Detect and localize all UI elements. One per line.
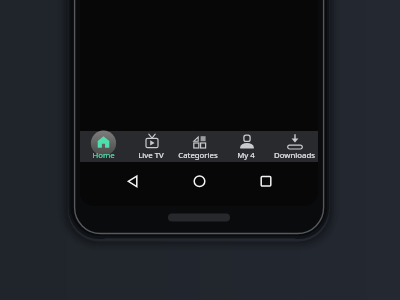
- staticText: Categories: [178, 150, 218, 161]
- button[interactable]: Live TV: [127, 131, 174, 162]
- staticText: Home: [92, 150, 115, 161]
- button[interactable]: [184, 167, 215, 196]
- button[interactable]: [251, 167, 282, 196]
- staticText: Downloads: [274, 150, 315, 161]
- button[interactable]: Home: [80, 131, 127, 162]
- staticText: Live TV: [138, 150, 164, 161]
- staticText: My 4: [237, 150, 255, 161]
- button[interactable]: [117, 167, 148, 196]
- button[interactable]: Categories: [174, 131, 222, 162]
- button[interactable]: Downloads: [270, 131, 318, 162]
- button[interactable]: My 4: [222, 131, 270, 162]
